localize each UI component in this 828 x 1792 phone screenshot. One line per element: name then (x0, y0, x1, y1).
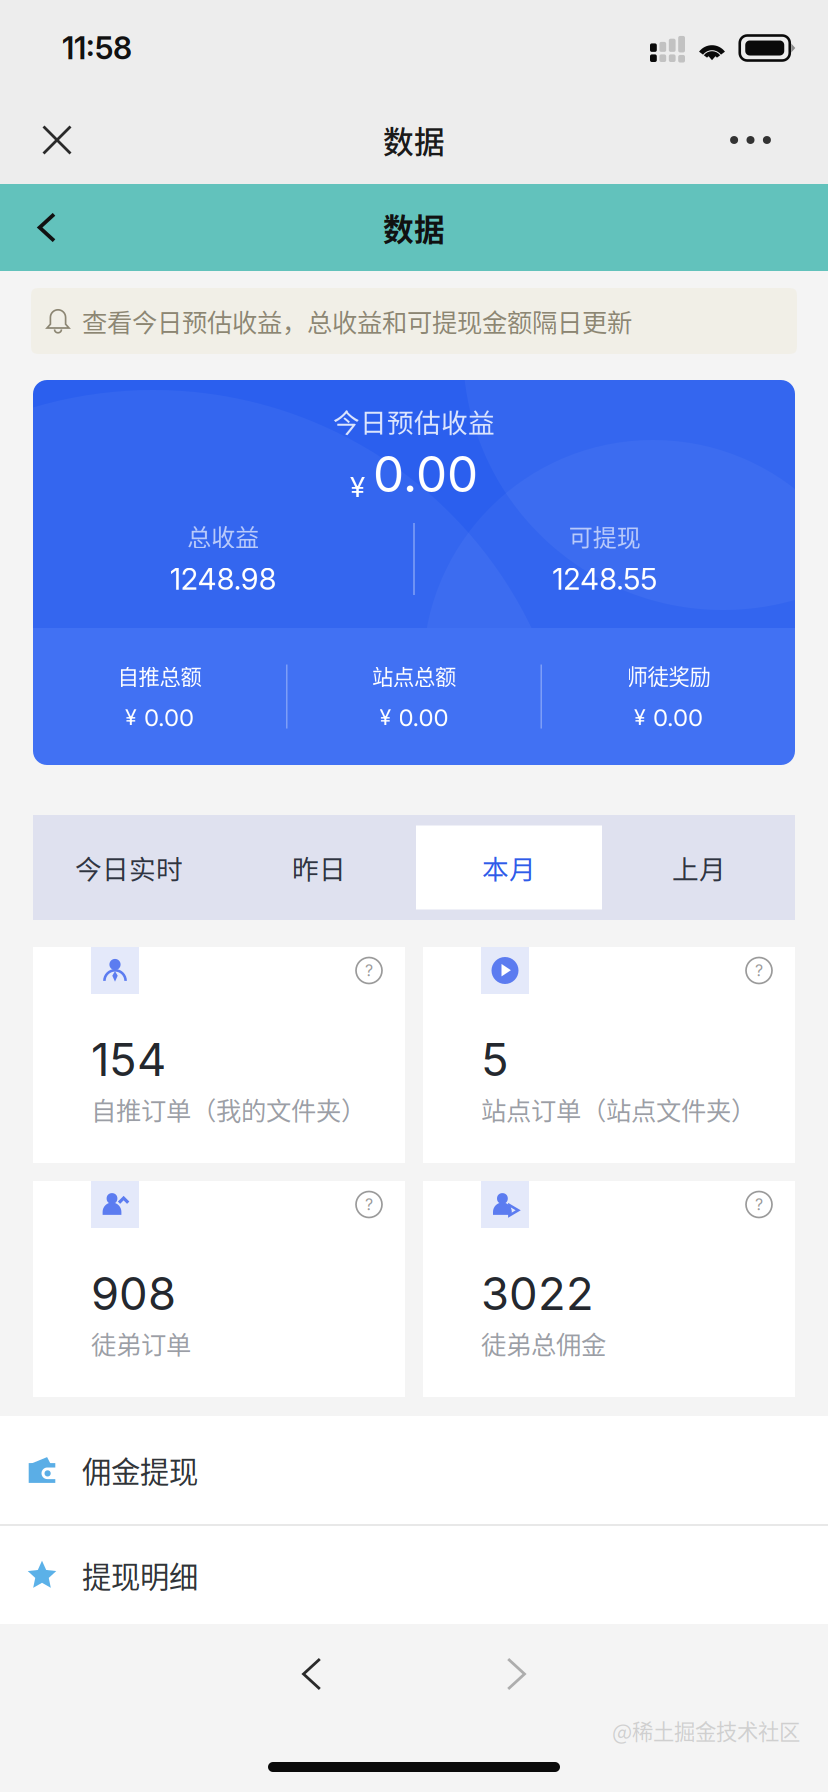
staticText: ? (755, 1195, 763, 1214)
staticText: 1248.55 (552, 561, 657, 597)
staticText: 0.00 (144, 703, 194, 732)
staticText: 自推总额 (117, 660, 201, 691)
staticText: 11:58 (62, 29, 132, 66)
staticText: 154 (91, 1032, 166, 1087)
staticText: 0.00 (653, 703, 703, 732)
staticText: 可提现 (569, 519, 641, 553)
button[interactable]: 昨日 (224, 815, 414, 920)
staticText: ¥ (125, 705, 137, 730)
button[interactable]: 佣金提现 (0, 1416, 828, 1524)
button[interactable]: 关闭 (13, 96, 101, 184)
staticText: 5 (481, 1032, 509, 1087)
staticText: 3022 (481, 1266, 594, 1321)
button[interactable]: 更多 (711, 96, 790, 184)
button[interactable]: 提现明细 (0, 1526, 828, 1624)
staticText: 908 (91, 1266, 176, 1321)
staticText: 师徒奖励 (626, 660, 710, 691)
staticText: ? (755, 961, 763, 980)
staticText: @稀土掘金技术社区 (612, 1715, 800, 1746)
button[interactable]: ? (423, 947, 795, 1163)
button[interactable]: ? (33, 1181, 405, 1397)
staticText: 站点订单（站点文件夹） (481, 1091, 756, 1128)
staticText: 昨日 (292, 848, 346, 887)
staticText: 徒弟总佣金 (481, 1325, 606, 1362)
staticText: 数据 (383, 205, 445, 250)
button[interactable]: 今日实时 (34, 815, 224, 920)
staticText: 今日预估收益 (333, 402, 495, 440)
button[interactable]: ? (423, 1181, 795, 1397)
staticText: 本月 (482, 848, 536, 887)
staticText: 1248.98 (170, 561, 277, 597)
staticText: ? (365, 1195, 373, 1214)
staticText: 今日实时 (75, 848, 183, 887)
staticText: 站点总额 (372, 660, 456, 691)
staticText: 佣金提现 (82, 1449, 198, 1491)
staticText: 0.00 (373, 444, 478, 504)
staticText: 提现明细 (82, 1554, 198, 1596)
staticText: 数据 (383, 118, 445, 162)
button[interactable]: 上月 (604, 815, 794, 920)
staticText: ? (365, 961, 373, 980)
staticText: ¥ (634, 705, 646, 730)
button[interactable]: ? (33, 947, 405, 1163)
staticText: ¥ (379, 705, 391, 730)
button[interactable]: 返回 (8, 184, 88, 271)
staticText: 徒弟订单 (91, 1325, 191, 1362)
staticText: 查看今日预估收益，总收益和可提现金额隔日更新 (82, 303, 632, 339)
staticText: 自推订单（我的文件夹） (91, 1091, 366, 1128)
staticText: 0.00 (398, 703, 448, 732)
button[interactable]: 上一页 (258, 1634, 368, 1714)
button[interactable]: 下一页 (460, 1634, 570, 1714)
staticText: 上月 (672, 848, 726, 887)
button[interactable]: 本月 (414, 815, 604, 920)
staticText: 总收益 (187, 519, 259, 553)
staticText: ¥ (350, 470, 365, 504)
